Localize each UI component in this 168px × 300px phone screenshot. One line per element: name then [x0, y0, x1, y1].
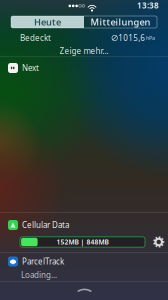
staticText: Bedeckt [20, 33, 51, 43]
staticText: Zeige mehr... [59, 46, 108, 56]
button[interactable]: Cellular data settings [153, 236, 164, 248]
button[interactable]: Next [0, 60, 168, 76]
staticText: 13:38 [137, 0, 159, 11]
button[interactable]: Cellular Data [0, 217, 168, 233]
button[interactable]: ParcelTrack [0, 253, 168, 269]
staticText: Heute [34, 16, 61, 28]
staticText: Mitteilungen [90, 16, 150, 28]
staticText: ParcelTrack [22, 256, 64, 267]
staticText: Cellular Data [22, 220, 69, 230]
staticText: 152MB | 848MB [56, 238, 108, 246]
button[interactable]: Mitteilungen [84, 16, 157, 28]
staticText: 1015,6 [118, 33, 145, 43]
staticText: Loading... [21, 270, 57, 280]
button[interactable]: Zeige mehr... [0, 45, 168, 57]
button[interactable]: Heute [11, 16, 84, 28]
staticText: Next [22, 63, 39, 73]
staticText: hPa [146, 34, 155, 42]
